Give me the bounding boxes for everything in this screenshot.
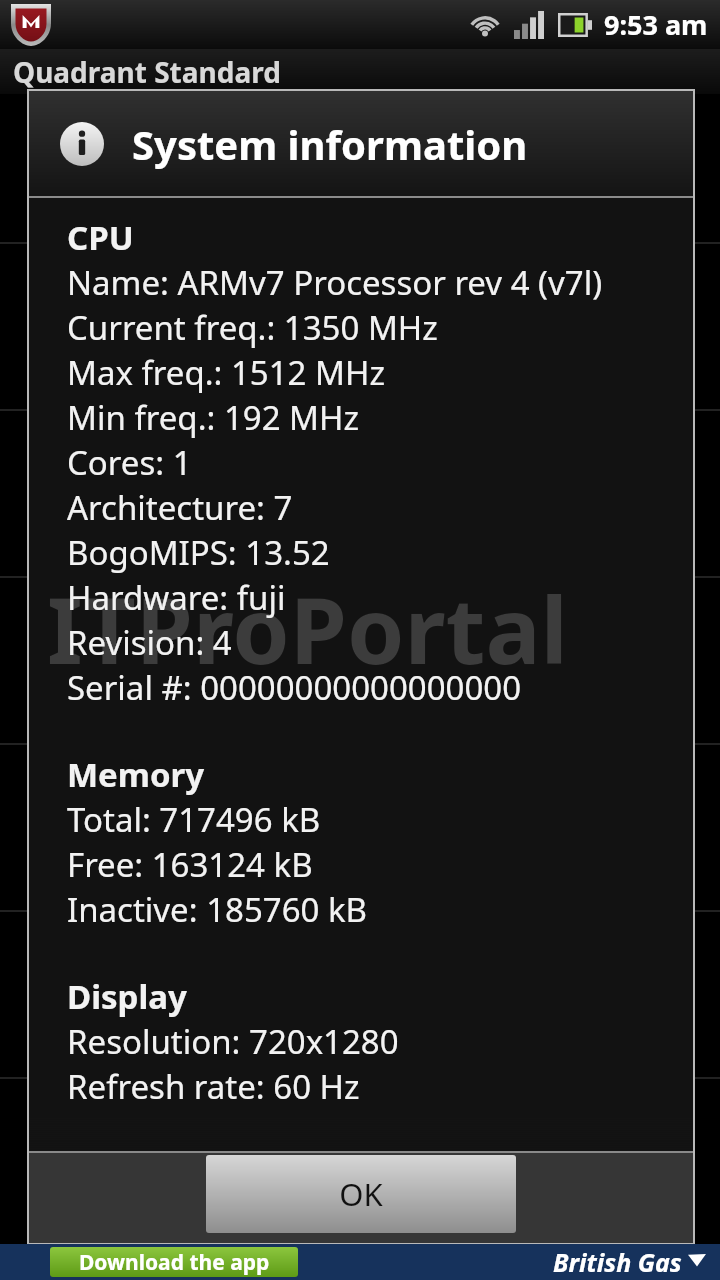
staticText: Display (67, 974, 187, 1019)
staticText: Hardware: fuji (67, 575, 286, 620)
staticText: Inactive: 185760 kB (67, 887, 368, 932)
staticText: British Gas (553, 1245, 682, 1279)
staticText: Resolution: 720x1280 (67, 1019, 399, 1064)
staticText: Min freq.: 192 MHz (67, 395, 360, 440)
staticText: Cores: 1 (67, 440, 192, 485)
staticText: Free: 163124 kB (67, 842, 313, 887)
staticText: ITProPortal (47, 566, 568, 691)
staticText: Name: ARMv7 Processor rev 4 (v7l) (67, 260, 603, 305)
staticText: Max freq.: 1512 MHz (67, 350, 385, 395)
button[interactable]: Download the app (0, 1244, 720, 1280)
staticText: Total: 717496 kB (67, 797, 321, 842)
staticText: Revision: 4 (67, 620, 232, 665)
staticText: Current freq.: 1350 MHz (67, 305, 438, 350)
staticText: Quadrant Standard (13, 53, 281, 91)
staticText: OK (339, 1173, 383, 1215)
staticText: Memory (67, 752, 205, 797)
staticText: Refresh rate: 60 Hz (67, 1064, 360, 1109)
staticText: 9:53 am (604, 6, 708, 43)
staticText: Architecture: 7 (67, 485, 293, 530)
button[interactable]: OK (206, 1155, 516, 1233)
staticText: Download the app (79, 1248, 270, 1277)
staticText: Serial #: 00000000000000000 (67, 665, 522, 710)
staticText: System information (132, 117, 528, 171)
staticText: BogoMIPS: 13.52 (67, 530, 330, 575)
staticText: CPU (67, 215, 134, 260)
